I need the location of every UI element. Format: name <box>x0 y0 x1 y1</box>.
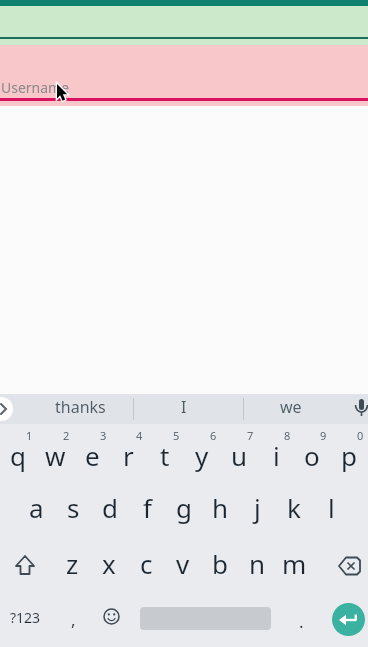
button[interactable]: , <box>53 604 93 634</box>
button[interactable]: l <box>311 485 351 529</box>
staticText: 2 <box>63 428 70 440</box>
staticText: 8 <box>284 428 291 440</box>
button[interactable]: q <box>0 433 38 477</box>
staticText: 0 <box>357 428 364 440</box>
button[interactable] <box>0 397 13 421</box>
staticText: s <box>67 490 80 525</box>
staticText: . <box>299 610 304 633</box>
button[interactable]: thanks <box>40 392 120 422</box>
button[interactable]: f <box>127 485 167 529</box>
button[interactable]: e <box>72 433 112 477</box>
staticText: g <box>176 490 192 525</box>
staticText: a <box>29 490 44 525</box>
button[interactable]: z <box>52 541 92 585</box>
button[interactable]: I <box>164 392 204 422</box>
staticText: we <box>280 396 302 418</box>
staticText: h <box>212 490 229 525</box>
button[interactable]: d <box>90 485 130 529</box>
staticText: n <box>249 546 266 581</box>
staticText: d <box>102 490 118 525</box>
button[interactable]: . <box>281 606 321 636</box>
staticText: i <box>273 438 280 473</box>
button[interactable]: t <box>145 433 185 477</box>
button[interactable]: i <box>256 433 296 477</box>
button[interactable]: j <box>237 485 277 529</box>
staticText: c <box>140 546 153 581</box>
staticText: y <box>195 438 209 473</box>
button[interactable]: u <box>219 433 259 477</box>
button[interactable]: we <box>271 392 311 422</box>
staticText: x <box>102 546 116 581</box>
staticText: l <box>328 490 335 525</box>
staticText: Username <box>1 78 70 97</box>
staticText: , <box>71 608 76 631</box>
staticText: w <box>45 438 66 473</box>
staticText: m <box>282 546 307 581</box>
staticText: 9 <box>320 428 327 440</box>
staticText: q <box>10 438 26 473</box>
staticText: 6 <box>210 428 217 440</box>
button[interactable]: c <box>126 541 166 585</box>
button[interactable]: s <box>53 485 93 529</box>
button[interactable]: n <box>237 541 277 585</box>
staticText: o <box>304 438 320 473</box>
staticText: u <box>231 438 248 473</box>
button[interactable] <box>332 548 368 584</box>
staticText: k <box>287 490 301 525</box>
button[interactable] <box>94 599 130 635</box>
button[interactable]: x <box>89 541 129 585</box>
button[interactable]: p <box>329 433 368 477</box>
button[interactable] <box>0 45 368 106</box>
staticText: 5 <box>173 428 180 440</box>
button[interactable] <box>7 548 43 584</box>
button[interactable]: a <box>16 485 56 529</box>
button[interactable]: v <box>163 541 203 585</box>
button[interactable] <box>0 6 368 45</box>
staticText: 1 <box>26 428 33 440</box>
staticText: z <box>66 546 79 581</box>
staticText: I <box>181 396 187 418</box>
button[interactable]: y <box>182 433 222 477</box>
button[interactable]: b <box>200 541 240 585</box>
staticText: 7 <box>247 428 254 440</box>
button[interactable]: m <box>274 541 314 585</box>
button[interactable]: o <box>292 433 332 477</box>
button[interactable]: w <box>35 433 75 477</box>
button[interactable]: h <box>200 485 240 529</box>
staticText: b <box>212 546 228 581</box>
staticText: e <box>85 438 100 473</box>
button[interactable]: r <box>108 433 148 477</box>
staticText: 3 <box>100 428 107 440</box>
staticText: ?123 <box>10 608 41 627</box>
button[interactable] <box>332 603 365 636</box>
button[interactable]: g <box>164 485 204 529</box>
staticText: 4 <box>136 428 143 440</box>
staticText: t <box>160 438 170 473</box>
staticText: p <box>341 438 357 473</box>
button[interactable]: k <box>274 485 314 529</box>
button[interactable] <box>350 396 368 422</box>
button[interactable]: ?123 <box>0 602 50 632</box>
staticText: v <box>176 546 190 581</box>
staticText: j <box>254 490 261 525</box>
staticText: thanks <box>55 396 106 418</box>
staticText: r <box>123 438 134 473</box>
staticText: f <box>143 490 152 525</box>
